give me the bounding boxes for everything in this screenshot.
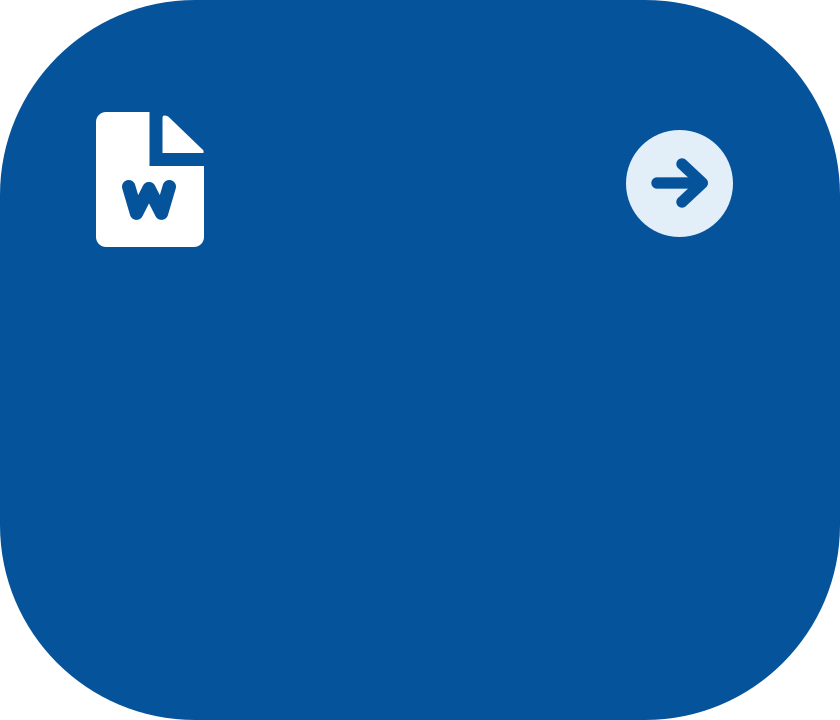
button[interactable]: Continue [626, 130, 733, 237]
